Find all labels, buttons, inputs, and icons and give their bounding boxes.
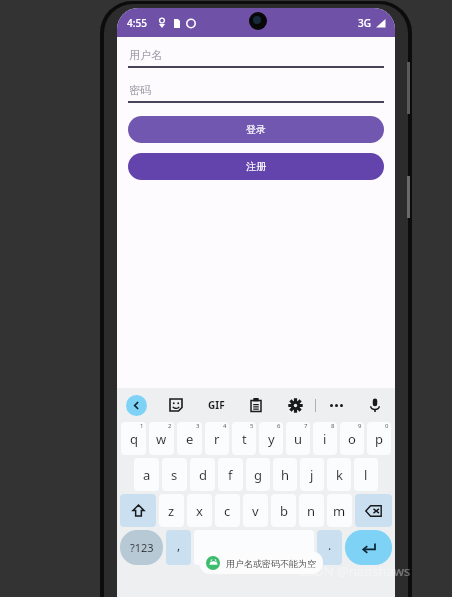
button[interactable]: g — [246, 458, 270, 491]
button[interactable]: Back — [126, 395, 147, 416]
button[interactable]: c — [215, 494, 240, 527]
staticText: z — [168, 502, 175, 520]
staticText: y — [268, 430, 275, 448]
button[interactable]: i — [313, 422, 337, 455]
staticText: . — [328, 537, 332, 553]
staticText: d — [199, 466, 207, 484]
button[interactable]: Stickers — [165, 394, 187, 416]
staticText: 用户名 — [129, 48, 162, 62]
staticText: g — [254, 466, 262, 484]
staticText: CSDN @nanshaws — [299, 562, 411, 580]
staticText: 9 — [358, 422, 362, 430]
staticText: o — [348, 430, 356, 448]
button[interactable]: Shift — [120, 494, 156, 527]
staticText: k — [336, 466, 343, 484]
staticText: n — [307, 502, 316, 520]
staticText: q — [130, 430, 138, 448]
button[interactable]: v — [243, 494, 268, 527]
button[interactable]: d — [190, 458, 215, 491]
button[interactable]: p — [367, 422, 391, 455]
staticText: 密码 — [129, 83, 151, 97]
staticText: f — [228, 466, 233, 484]
staticText: t — [242, 430, 247, 448]
button[interactable]: Settings — [284, 394, 306, 416]
staticText: 登录 — [246, 123, 266, 136]
button[interactable]: 用户名 — [128, 48, 384, 68]
staticText: , — [177, 537, 181, 553]
staticText: 8 — [331, 422, 335, 430]
button[interactable]: m — [327, 494, 352, 527]
button[interactable]: u — [286, 422, 310, 455]
button[interactable]: Backspace — [355, 494, 392, 527]
staticText: 0 — [385, 422, 389, 430]
staticText: 3G — [358, 16, 371, 30]
staticText: u — [294, 430, 303, 448]
button[interactable]: Clipboard — [245, 394, 267, 416]
staticText: 7 — [304, 422, 308, 430]
button[interactable]: k — [327, 458, 351, 491]
button[interactable]: a — [134, 458, 159, 491]
button[interactable]: ?123 — [120, 530, 163, 565]
button[interactable]: e — [177, 422, 202, 455]
button[interactable]: Enter — [345, 530, 392, 565]
button[interactable]: r — [205, 422, 229, 455]
button[interactable]: h — [273, 458, 297, 491]
button[interactable]: l — [354, 458, 378, 491]
staticText: w — [156, 430, 167, 448]
button[interactable]: 登录 — [128, 116, 384, 143]
staticText: 注册 — [246, 160, 266, 173]
button[interactable]: Voice input — [364, 394, 386, 416]
button[interactable]: y — [259, 422, 283, 455]
staticText: 4:55 — [127, 16, 147, 30]
button[interactable]: b — [271, 494, 296, 527]
button[interactable]: 密码 — [128, 83, 384, 103]
button[interactable]: , — [166, 530, 191, 565]
staticText: ?123 — [130, 540, 154, 555]
button[interactable]: s — [162, 458, 187, 491]
button[interactable]: Space — [194, 530, 314, 565]
staticText: l — [364, 466, 368, 484]
staticText: j — [310, 466, 314, 484]
staticText: GIF — [208, 398, 225, 412]
button[interactable]: q — [121, 422, 146, 455]
staticText: 用户名或密码不能为空 — [226, 558, 316, 569]
button[interactable]: f — [218, 458, 243, 491]
staticText: v — [252, 502, 259, 520]
staticText: m — [333, 502, 346, 520]
staticText: a — [143, 466, 151, 484]
staticText: 2 — [168, 422, 172, 430]
staticText: b — [280, 502, 288, 520]
staticText: i — [323, 430, 327, 448]
staticText: p — [375, 430, 383, 448]
button[interactable]: x — [187, 494, 212, 527]
staticText: 1 — [140, 422, 144, 430]
staticText: 3 — [196, 422, 200, 430]
button[interactable]: o — [340, 422, 364, 455]
button[interactable]: t — [232, 422, 256, 455]
staticText: c — [224, 502, 231, 520]
button[interactable]: GIF — [204, 394, 228, 416]
button[interactable]: n — [299, 494, 324, 527]
button[interactable]: j — [300, 458, 324, 491]
button[interactable]: . — [317, 530, 342, 565]
staticText: s — [171, 466, 178, 484]
staticText: r — [214, 430, 220, 448]
staticText: 4 — [223, 422, 227, 430]
button[interactable]: More options — [325, 394, 347, 416]
staticText: e — [186, 430, 194, 448]
button[interactable]: z — [159, 494, 184, 527]
staticText: 5 — [250, 422, 254, 430]
staticText: x — [196, 502, 203, 520]
staticText: 6 — [277, 422, 281, 430]
button[interactable]: w — [149, 422, 174, 455]
button[interactable]: 注册 — [128, 153, 384, 180]
staticText: h — [281, 466, 290, 484]
